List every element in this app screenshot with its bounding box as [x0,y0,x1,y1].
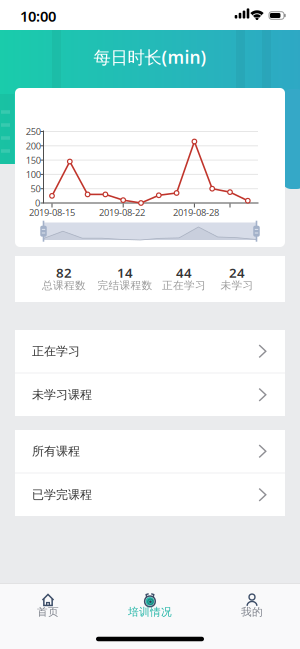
staticText: 正在学习 [162,279,206,292]
staticText: 未学习课程 [32,387,92,402]
staticText: 总课程数 [42,279,86,292]
staticText: 150 [26,154,41,166]
staticText: 所有课程 [32,444,80,459]
button[interactable]: 正在学习 [15,330,285,372]
button[interactable]: 未学习课程 [15,373,285,416]
staticText: 完结课程数 [97,279,152,292]
button[interactable]: 所有课程 [15,430,285,472]
staticText: 250 [26,125,41,138]
staticText: 2019-08-15 [29,206,75,219]
button[interactable]: 培训情况 [100,583,200,625]
staticText: 0 [35,197,40,209]
staticText: 10:00 [20,6,56,26]
button[interactable]: 已学完课程 [15,473,285,516]
staticText: 培训情况 [128,605,172,618]
staticText: 已学完课程 [32,487,92,502]
staticText: 我的 [241,605,263,618]
staticText: 首页 [37,605,59,618]
staticText: 未学习 [220,279,253,292]
staticText: 50 [30,182,40,195]
staticText: 82 [56,264,72,281]
staticText: 正在学习 [32,344,80,359]
staticText: 每日时长(min) [93,45,206,68]
button[interactable]: 首页 [0,583,98,625]
staticText: 2019-08-22 [99,206,145,219]
staticText: 2019-08-28 [173,206,219,219]
staticText: 24 [229,264,245,281]
staticText: 200 [26,140,41,152]
staticText: 100 [26,168,41,181]
button[interactable]: 我的 [202,583,300,625]
staticText: 44 [176,264,192,281]
staticText: 14 [117,264,133,281]
